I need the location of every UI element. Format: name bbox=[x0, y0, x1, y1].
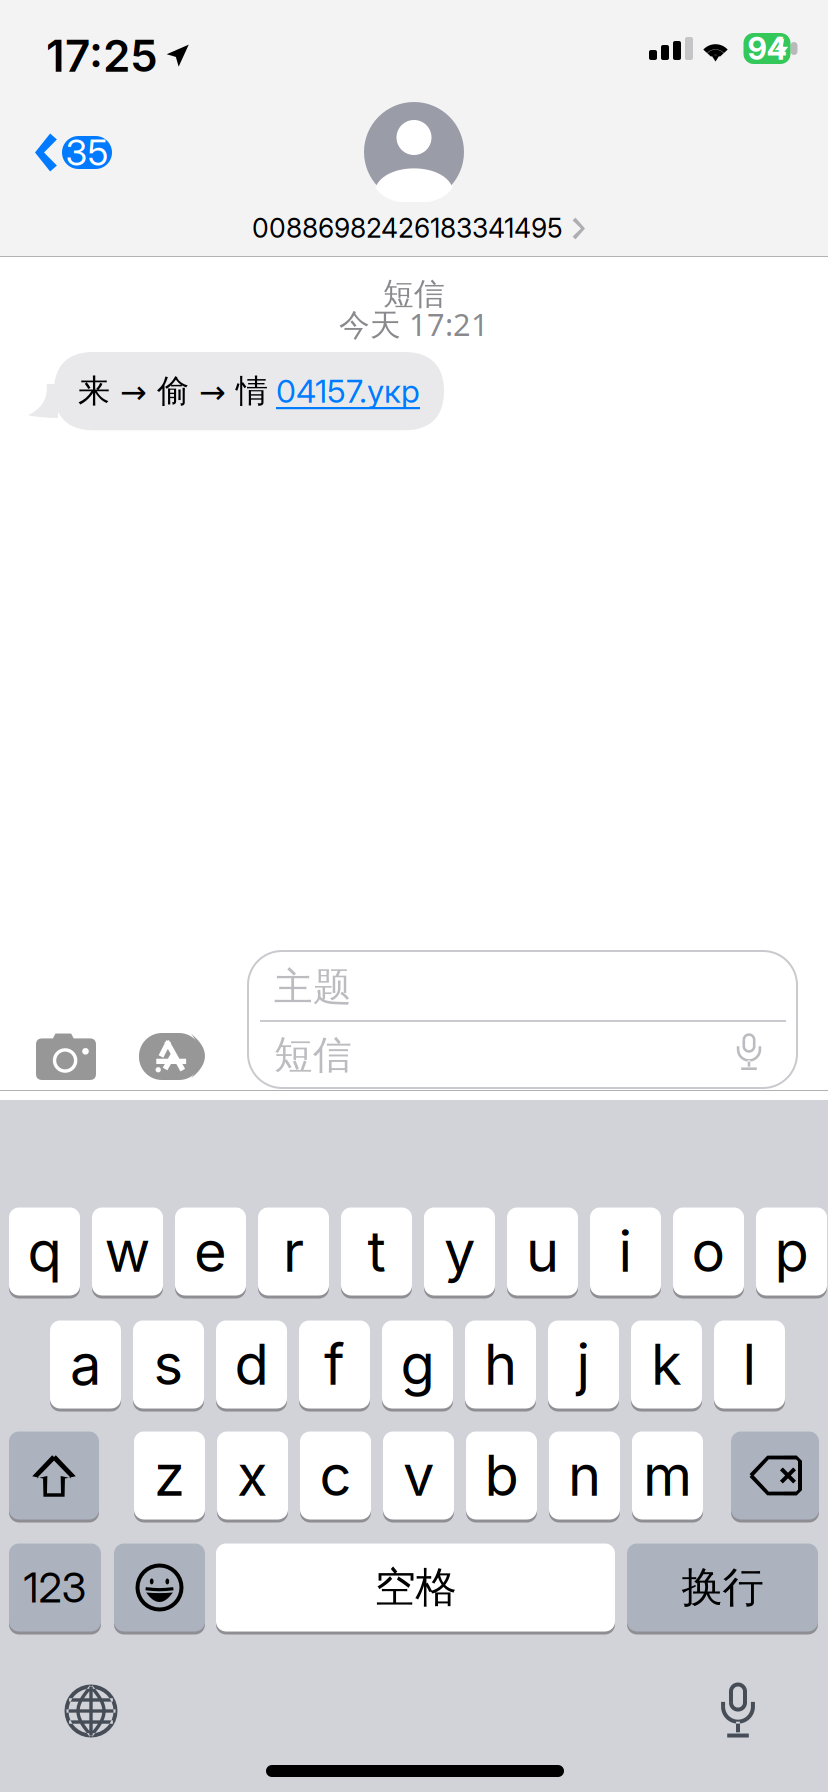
button[interactable]: p bbox=[756, 1206, 827, 1297]
button[interactable]: Emoji bbox=[114, 1542, 205, 1633]
button[interactable]: k bbox=[631, 1319, 702, 1410]
staticText: y bbox=[444, 1218, 475, 1285]
button[interactable]: c bbox=[300, 1430, 371, 1521]
button[interactable]: 空格 bbox=[216, 1542, 615, 1633]
staticText: w bbox=[104, 1218, 150, 1285]
button[interactable]: Delete bbox=[731, 1430, 819, 1521]
button[interactable]: b bbox=[466, 1430, 537, 1521]
button[interactable]: 换行 bbox=[627, 1542, 818, 1633]
button[interactable]: h bbox=[465, 1319, 536, 1410]
button[interactable]: z bbox=[134, 1430, 205, 1521]
button[interactable]: App Store bbox=[124, 1010, 216, 1102]
staticText: o bbox=[691, 1218, 725, 1285]
staticText: 来 → 偷 → 情 bbox=[78, 371, 268, 411]
staticText: 17:25 bbox=[46, 29, 158, 82]
button[interactable]: Next keyboard bbox=[43, 1663, 139, 1759]
staticText: 00886982426183341495 bbox=[252, 212, 563, 244]
staticText: m bbox=[643, 1442, 692, 1509]
staticText: g bbox=[400, 1331, 434, 1398]
staticText: 94 bbox=[747, 30, 786, 67]
staticText: a bbox=[70, 1331, 101, 1398]
staticText: 短信 bbox=[383, 275, 445, 313]
button[interactable]: 00886982426183341495 bbox=[252, 202, 602, 254]
button[interactable]: e bbox=[175, 1206, 246, 1297]
staticText: e bbox=[194, 1218, 227, 1285]
button[interactable]: o bbox=[673, 1206, 744, 1297]
button[interactable]: n bbox=[549, 1430, 620, 1521]
staticText: t bbox=[367, 1218, 385, 1285]
staticText: q bbox=[27, 1218, 61, 1285]
button[interactable]: w bbox=[92, 1206, 163, 1297]
button[interactable]: Dictate bbox=[690, 1661, 786, 1757]
staticText: i bbox=[618, 1218, 632, 1285]
button[interactable]: Shift bbox=[9, 1430, 99, 1521]
staticText: n bbox=[568, 1442, 601, 1509]
staticText: b bbox=[484, 1442, 518, 1509]
button[interactable]: t bbox=[341, 1206, 412, 1297]
button[interactable]: a bbox=[50, 1319, 121, 1410]
button[interactable]: y bbox=[424, 1206, 495, 1297]
staticText: c bbox=[319, 1442, 351, 1509]
staticText: x bbox=[237, 1442, 268, 1509]
staticText: 短信 bbox=[274, 1031, 352, 1079]
button[interactable]: m bbox=[632, 1430, 703, 1521]
button[interactable]: d bbox=[216, 1319, 287, 1410]
button[interactable]: i bbox=[590, 1206, 661, 1297]
button[interactable]: q bbox=[9, 1206, 80, 1297]
staticText: 04157.укр bbox=[276, 372, 420, 410]
button[interactable]: v bbox=[383, 1430, 454, 1521]
staticText: f bbox=[324, 1331, 345, 1398]
staticText: 换行 bbox=[681, 1561, 763, 1614]
button[interactable]: Dictate bbox=[722, 1018, 776, 1084]
staticText: s bbox=[153, 1331, 183, 1398]
staticText: 空格 bbox=[374, 1561, 456, 1614]
button[interactable]: Back bbox=[0, 112, 130, 192]
staticText: v bbox=[403, 1442, 434, 1509]
button[interactable]: l bbox=[714, 1319, 785, 1410]
staticText: k bbox=[651, 1331, 682, 1398]
staticText: j bbox=[576, 1331, 590, 1398]
button[interactable]: x bbox=[217, 1430, 288, 1521]
button[interactable]: Camera bbox=[20, 1010, 112, 1102]
staticText: 123 bbox=[23, 1562, 86, 1612]
button[interactable]: u bbox=[507, 1206, 578, 1297]
button[interactable]: j bbox=[548, 1319, 619, 1410]
staticText: 今天 17:21 bbox=[339, 303, 489, 345]
staticText: d bbox=[234, 1331, 268, 1398]
button[interactable]: r bbox=[258, 1206, 329, 1297]
button[interactable]: g bbox=[382, 1319, 453, 1410]
staticText: u bbox=[526, 1218, 559, 1285]
staticText: 35 bbox=[65, 131, 108, 174]
staticText: p bbox=[774, 1218, 808, 1285]
staticText: h bbox=[484, 1331, 517, 1398]
staticText: 主题 bbox=[274, 963, 352, 1011]
button[interactable]: s bbox=[133, 1319, 204, 1410]
button[interactable]: f bbox=[299, 1319, 370, 1410]
staticText: z bbox=[154, 1442, 185, 1509]
staticText: l bbox=[742, 1331, 756, 1398]
button[interactable]: 123 bbox=[9, 1542, 101, 1633]
staticText: r bbox=[283, 1218, 304, 1285]
